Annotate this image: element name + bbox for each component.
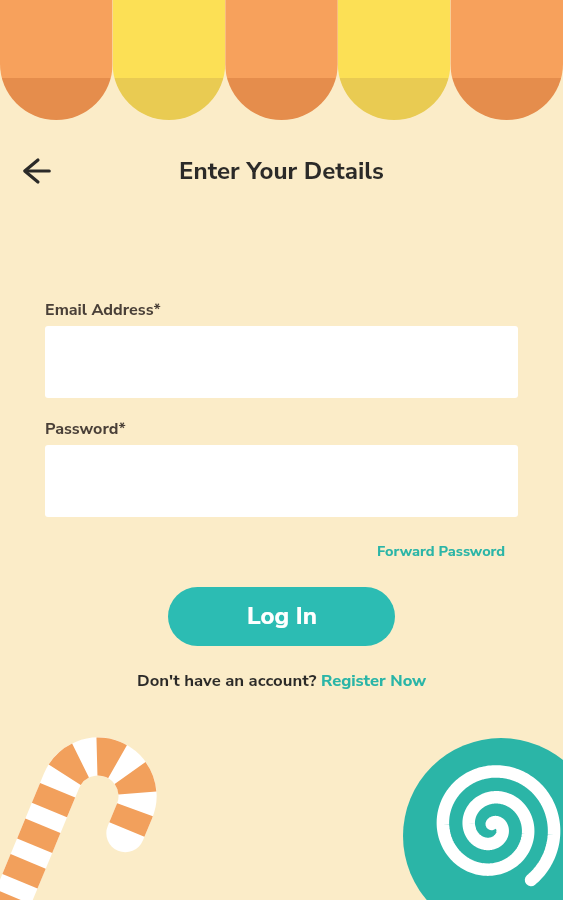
button[interactable]: Register Now [321, 669, 427, 692]
staticText: Email Address* [45, 299, 161, 321]
staticText: Forward Password [377, 541, 506, 561]
staticText: Password* [45, 418, 126, 440]
button[interactable]: Log In [168, 587, 395, 646]
button[interactable]: Back [13, 147, 61, 195]
staticText: Register Now [321, 669, 427, 692]
staticText: Enter Your Details [179, 155, 384, 188]
staticText: Log In [247, 600, 317, 633]
staticText: Don't have an account? [137, 669, 321, 692]
button[interactable]: Forward Password [377, 541, 506, 561]
